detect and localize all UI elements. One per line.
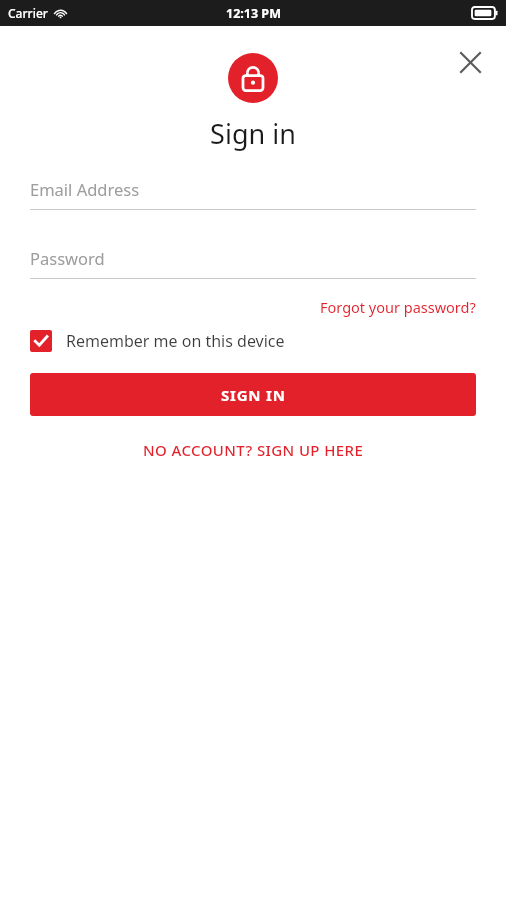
staticText: Sign in (0, 115, 506, 152)
button[interactable]: Close (448, 40, 492, 84)
staticText: 12:13 PM (226, 5, 281, 22)
staticText: NO ACCOUNT? SIGN UP HERE (143, 440, 364, 460)
staticText: Email Address (30, 178, 140, 200)
button[interactable]: Forgot your password? (320, 295, 476, 319)
staticText: Remember me on this device (66, 330, 285, 352)
button[interactable]: Remember me on this device (30, 330, 476, 352)
button[interactable]: Password (30, 247, 476, 279)
staticText: Forgot your password? (320, 297, 476, 317)
staticText: SIGN IN (221, 385, 286, 405)
staticText: Carrier (8, 5, 48, 21)
button[interactable]: SIGN IN (30, 373, 476, 416)
staticText: Password (30, 247, 105, 269)
button[interactable]: Email Address (30, 178, 476, 210)
button[interactable]: NO ACCOUNT? SIGN UP HERE (137, 436, 370, 464)
